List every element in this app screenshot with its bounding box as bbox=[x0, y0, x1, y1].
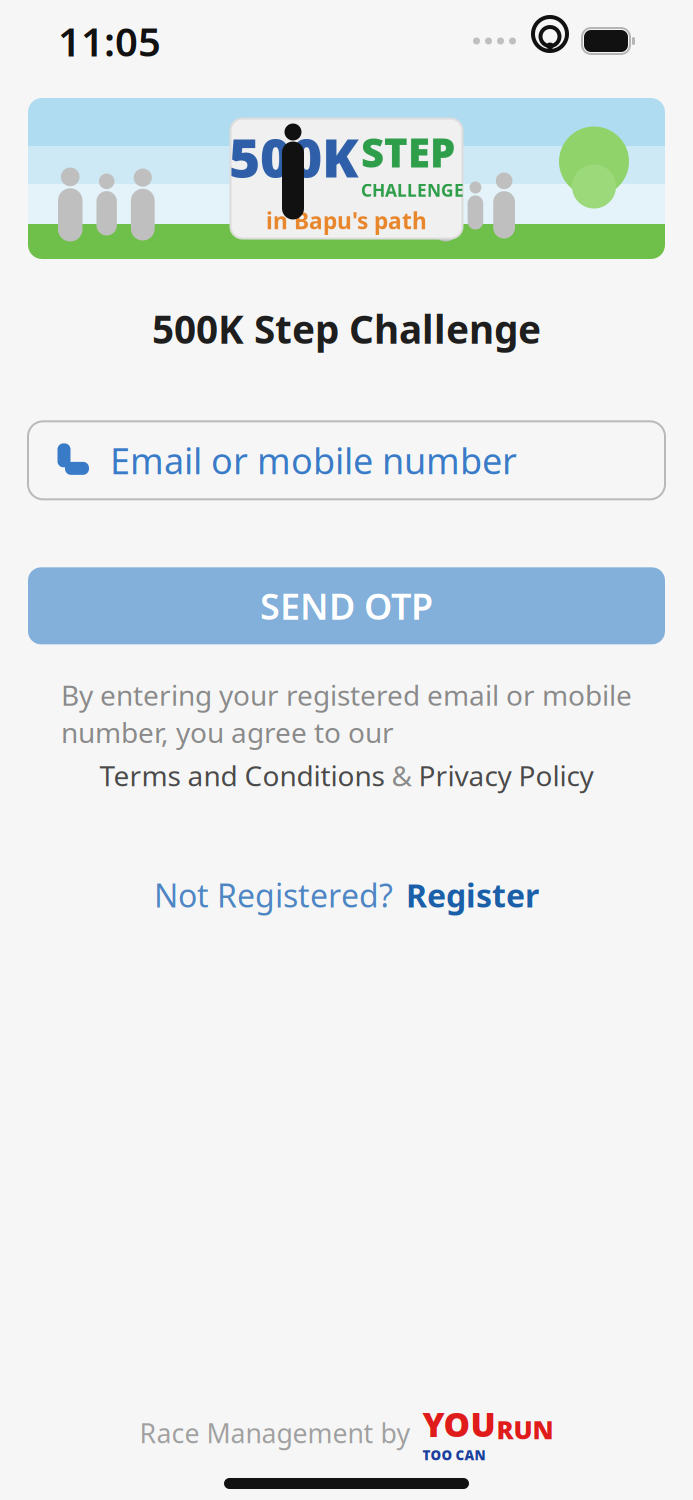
button[interactable]: Terms and Conditions bbox=[99, 757, 384, 794]
staticText: SEND OTP bbox=[260, 582, 433, 630]
button[interactable]: Privacy Policy bbox=[418, 757, 593, 794]
staticText: & bbox=[391, 757, 411, 794]
staticText: 500K Step Challenge bbox=[152, 303, 541, 354]
staticText: 500K bbox=[229, 121, 359, 192]
staticText: RUN bbox=[496, 1413, 553, 1446]
staticText: Register bbox=[406, 874, 539, 916]
staticText: CHALLENGE bbox=[361, 178, 464, 201]
staticText: STEP bbox=[361, 125, 455, 178]
staticText: Not Registered? bbox=[154, 874, 393, 916]
button[interactable]: Not Registered? bbox=[140, 866, 553, 924]
staticText: Email or mobile number bbox=[110, 436, 517, 484]
staticText: Race Management by bbox=[139, 1415, 410, 1451]
staticText: in Bapu's path bbox=[266, 205, 427, 236]
button[interactable]: Email or mobile number bbox=[28, 421, 665, 499]
button[interactable]: SEND OTP bbox=[28, 567, 665, 644]
staticText: Privacy Policy bbox=[418, 757, 593, 794]
staticText: YOU bbox=[422, 1402, 495, 1446]
staticText: TOO CAN bbox=[422, 1446, 485, 1464]
staticText: By entering your registered email or mob… bbox=[61, 676, 632, 751]
staticText: 11:05 bbox=[58, 14, 161, 67]
staticText: Terms and Conditions bbox=[99, 757, 384, 794]
